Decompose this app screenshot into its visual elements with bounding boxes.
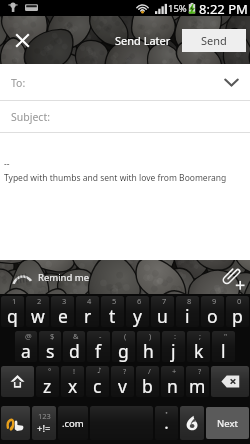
- staticText: To:: [11, 76, 26, 90]
- staticText: ♪: [97, 366, 102, 375]
- staticText: o: [207, 304, 218, 327]
- button[interactable]: ): [137, 331, 160, 362]
- button[interactable]: .com: [58, 406, 88, 440]
- button[interactable]: /: [136, 366, 159, 397]
- staticText: °: [48, 366, 52, 376]
- button[interactable]: !: [61, 366, 84, 397]
- staticText: Send Later: [115, 33, 171, 48]
- button[interactable]: 2: [26, 296, 49, 327]
- button[interactable]: Symbols: [32, 406, 56, 440]
- staticText: -: [99, 331, 102, 341]
- staticText: Typed with thumbs and sent with love fro…: [4, 172, 227, 184]
- staticText: ;: [199, 331, 202, 341]
- button[interactable]: Shift: [1, 366, 34, 397]
- staticText: 5: [112, 296, 117, 306]
- button[interactable]: 1: [1, 296, 24, 327]
- staticText: l: [221, 339, 226, 362]
- staticText: j: [171, 339, 176, 362]
- staticText: :: [174, 331, 177, 341]
- button[interactable]: ;: [187, 331, 210, 362]
- staticText: 2: [37, 296, 42, 306]
- button[interactable]: 6: [126, 296, 149, 327]
- button[interactable]: Attach file: [217, 261, 250, 294]
- button[interactable]: Voice input: [180, 406, 204, 440]
- staticText: b: [142, 374, 153, 397]
- staticText: 8:22 PM: [199, 0, 248, 16]
- button[interactable]: 3: [51, 296, 74, 327]
- staticText: &: [73, 331, 79, 341]
- staticText: c: [93, 374, 102, 397]
- button[interactable]: Send: [182, 29, 246, 52]
- button[interactable]: -: [87, 331, 110, 362]
- button[interactable]: 5: [101, 296, 124, 327]
- staticText: a: [21, 339, 31, 362]
- staticText: u: [157, 304, 168, 327]
- staticText: r: [84, 304, 92, 327]
- staticText: 7: [162, 296, 167, 306]
- staticText: w: [31, 304, 45, 327]
- button[interactable]: (: [112, 331, 135, 362]
- button[interactable]: :: [162, 331, 185, 362]
- staticText: 1: [12, 296, 17, 306]
- staticText: h: [143, 339, 154, 362]
- staticText: t: [109, 304, 116, 327]
- staticText: m: [189, 374, 206, 397]
- staticText: q: [7, 304, 18, 327]
- button[interactable]: ": [212, 331, 235, 362]
- button[interactable]: Backspace: [211, 366, 249, 397]
- button[interactable]: Next: [206, 407, 249, 439]
- staticText: 9: [212, 296, 217, 306]
- staticText: +: [172, 366, 177, 376]
- button[interactable]: Handwriting: [1, 406, 30, 440]
- button[interactable]: ?: [186, 366, 209, 397]
- staticText: z: [43, 374, 52, 397]
- button[interactable]: @: [15, 331, 37, 362]
- button[interactable]: Space: [90, 406, 153, 440]
- button[interactable]: $: [39, 331, 61, 362]
- staticText: !: [73, 366, 76, 376]
- button[interactable]: °: [36, 366, 59, 397]
- button[interactable]: 7: [151, 296, 174, 327]
- button[interactable]: Subject:: [0, 101, 250, 133]
- staticText: ?: [123, 366, 127, 376]
- button[interactable]: ?: [111, 366, 134, 397]
- staticText: 4: [87, 296, 92, 306]
- staticText: v: [118, 374, 127, 397]
- button[interactable]: 0: [226, 296, 249, 327]
- staticText: i: [185, 304, 190, 327]
- button[interactable]: 9: [201, 296, 224, 327]
- staticText: 0: [237, 296, 242, 306]
- staticText: s: [46, 339, 55, 362]
- button[interactable]: Close: [0, 18, 44, 62]
- staticText: .com: [62, 417, 84, 430]
- button[interactable]: 8: [176, 296, 199, 327]
- button[interactable]: 4: [76, 296, 99, 327]
- staticText: ": [224, 331, 228, 341]
- staticText: Send: [201, 33, 227, 48]
- button[interactable]: &: [63, 331, 85, 362]
- button[interactable]: To:: [0, 64, 250, 101]
- staticText: 3: [62, 296, 67, 306]
- staticText: Remind me: [38, 271, 90, 284]
- staticText: /: [148, 366, 151, 376]
- staticText: Next: [217, 417, 238, 430]
- staticText: k: [194, 339, 204, 362]
- staticText: --: [4, 158, 10, 170]
- button[interactable]: Period: [155, 406, 178, 440]
- staticText: +!=: [37, 422, 51, 435]
- staticText: 15%: [168, 2, 187, 15]
- staticText: y: [133, 304, 142, 327]
- staticText: $: [50, 331, 55, 341]
- staticText: f: [95, 339, 102, 362]
- staticText: ?: [198, 366, 202, 376]
- button[interactable]: ♪: [86, 366, 109, 397]
- staticText: @: [25, 331, 32, 341]
- button[interactable]: Remind me: [6, 267, 90, 288]
- staticText: p: [232, 304, 243, 327]
- button[interactable]: Send Later: [108, 27, 178, 53]
- staticText: 123: [38, 411, 51, 421]
- staticText: Subject:: [11, 110, 50, 124]
- staticText: e: [58, 304, 68, 327]
- button[interactable]: +: [161, 366, 184, 397]
- staticText: ): [149, 331, 152, 341]
